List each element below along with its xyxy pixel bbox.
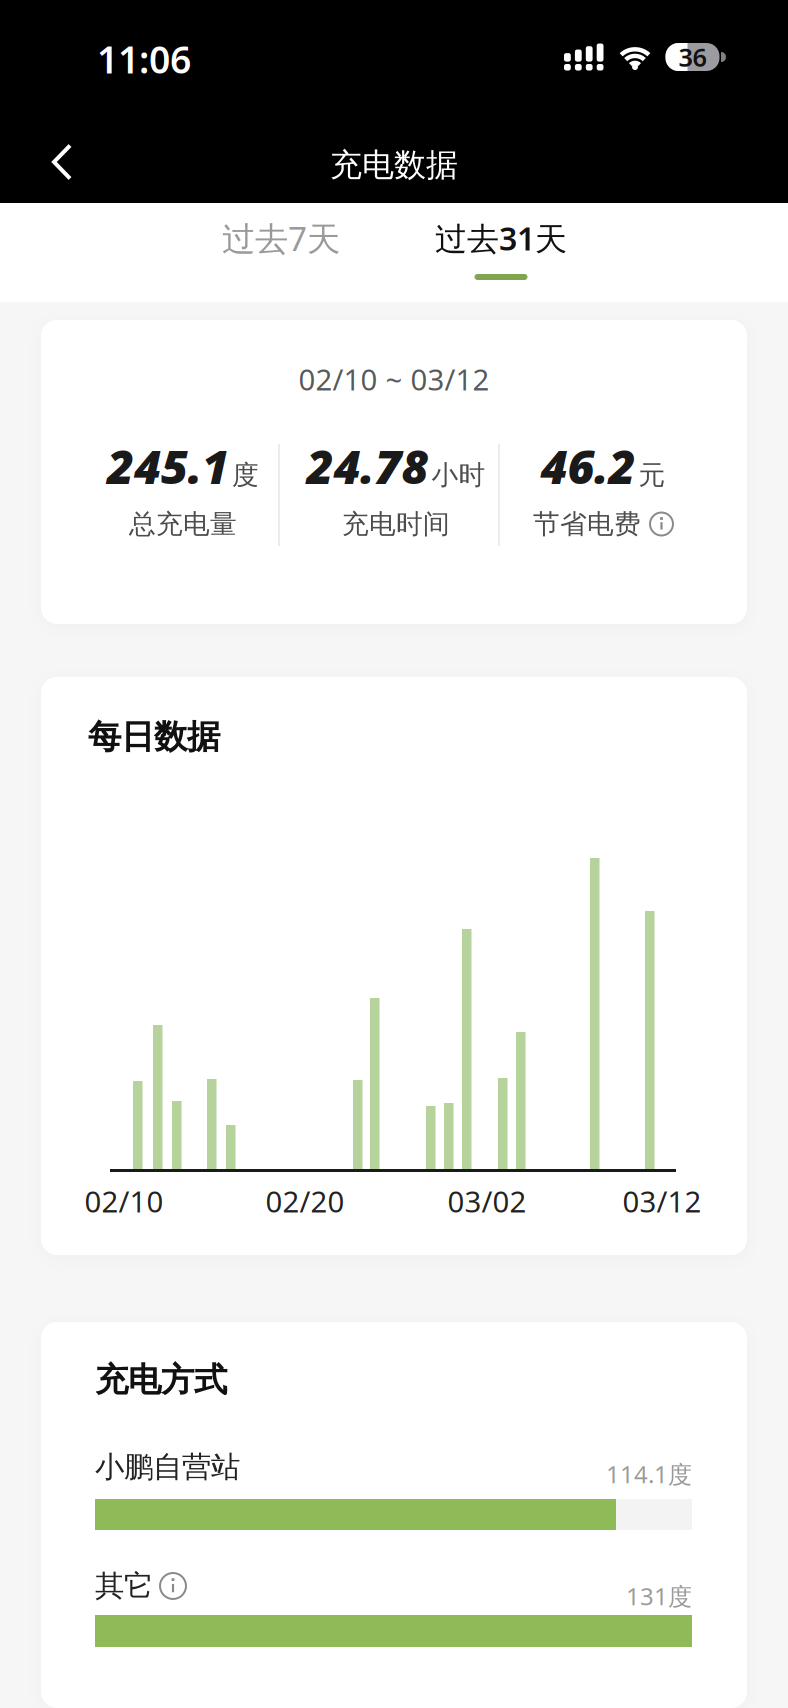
staticText: 02/10 [84,1181,163,1220]
staticText: 元 [638,459,665,492]
staticText: 02/10 ~ 03/12 [298,359,489,398]
staticText: 小鹏自营站 [95,1449,240,1485]
button[interactable]: Back [39,138,87,185]
button[interactable]: About saved cost [650,512,673,535]
staticText: 每日数据 [88,716,220,757]
staticText: 节省电费 [533,508,641,540]
staticText: 度 [232,459,259,492]
staticText: 02/20 [265,1181,344,1220]
staticText: 充电方式 [95,1359,227,1400]
button[interactable]: About other charging [160,1573,186,1599]
staticText: 11:06 [97,34,191,84]
staticText: 其它 [95,1568,153,1604]
staticText: 充电数据 [330,145,458,185]
staticText: 03/12 [622,1181,701,1220]
button[interactable]: 过去7天 [171,203,391,302]
staticText: 充电时间 [342,508,450,540]
staticText: 46.2 [540,435,635,497]
staticText: 24.78 [306,435,428,497]
staticText: 过去7天 [222,216,340,260]
staticText: 总充电量 [129,508,237,540]
staticText: 131度 [626,1580,692,1612]
staticText: 114.1度 [606,1458,692,1490]
staticText: 小时 [431,459,485,492]
staticText: 03/02 [447,1181,526,1220]
button[interactable]: 过去31天 [391,203,611,302]
staticText: 36 [678,40,706,74]
staticText: 过去31天 [435,217,567,259]
staticText: 245.1 [107,435,229,497]
